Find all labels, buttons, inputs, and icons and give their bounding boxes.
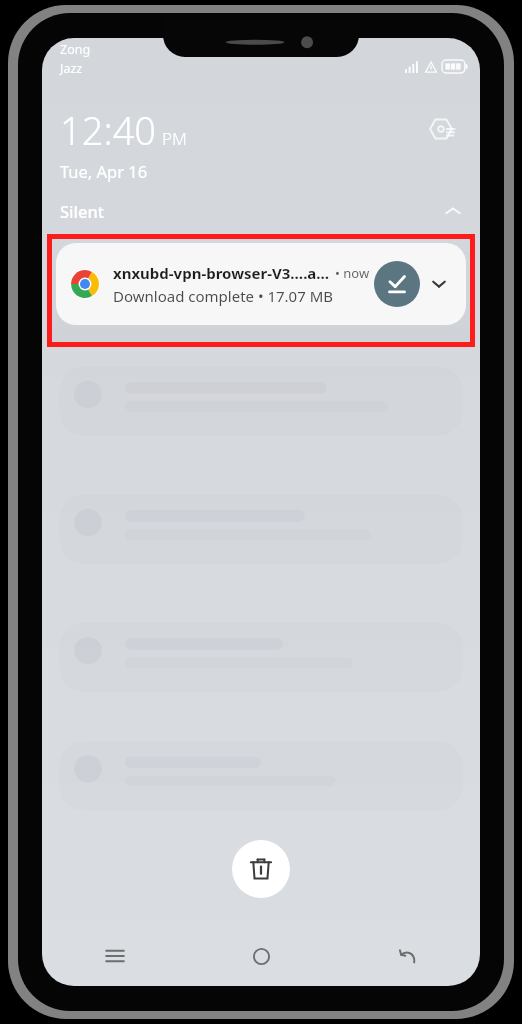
button[interactable]: Back bbox=[334, 934, 480, 978]
staticText: Zong bbox=[60, 41, 91, 58]
button[interactable]: Clear all notifications bbox=[232, 840, 290, 898]
button[interactable]: Notification settings bbox=[424, 110, 462, 148]
button[interactable]: Open download bbox=[374, 261, 420, 307]
button[interactable]: xnxubd-vpn-browser-V3….a… bbox=[56, 243, 466, 325]
button[interactable]: Silent bbox=[42, 196, 480, 226]
staticText: xnxubd-vpn-browser-V3….a… bbox=[113, 263, 330, 283]
staticText: Download complete • 17.07 MB bbox=[113, 286, 334, 306]
staticText: Silent bbox=[60, 200, 105, 222]
button[interactable]: Home bbox=[188, 934, 334, 978]
button[interactable]: Expand notification bbox=[420, 265, 458, 303]
staticText: Jazz bbox=[60, 60, 83, 77]
button[interactable]: Recent apps bbox=[42, 934, 188, 978]
staticText: • now bbox=[335, 264, 370, 282]
staticText: PM bbox=[162, 127, 187, 150]
staticText: 12:40 bbox=[60, 104, 157, 156]
staticText: Tue, Apr 16 bbox=[60, 160, 148, 182]
